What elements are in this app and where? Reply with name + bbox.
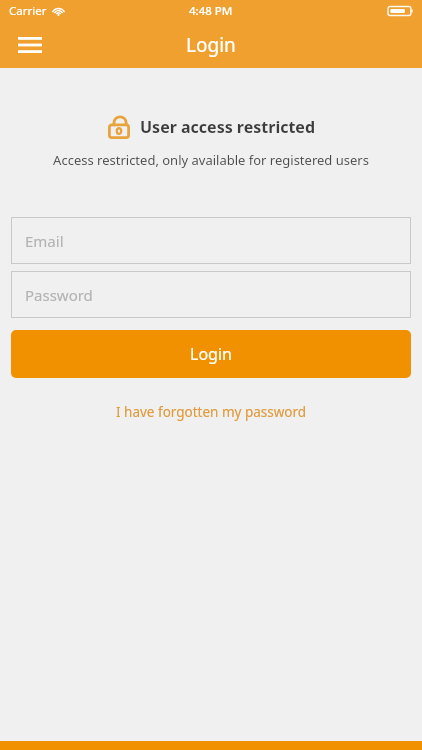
button[interactable]: I have forgotten my password — [104, 399, 319, 425]
staticText: Email — [25, 231, 64, 251]
staticText: Password — [25, 285, 93, 305]
staticText: Access restricted, only available for re… — [53, 151, 369, 169]
staticText: Login — [190, 343, 232, 365]
staticText: 4:48 PM — [189, 3, 233, 19]
button[interactable]: Menu — [10, 25, 50, 65]
staticText: Login — [186, 32, 236, 58]
button[interactable]: Password — [11, 271, 411, 318]
staticText: Carrier — [9, 3, 47, 19]
button[interactable]: Email — [11, 217, 411, 264]
button[interactable]: Login — [11, 330, 411, 378]
staticText: User access restricted — [140, 116, 316, 138]
staticText: I have forgotten my password — [116, 403, 307, 421]
